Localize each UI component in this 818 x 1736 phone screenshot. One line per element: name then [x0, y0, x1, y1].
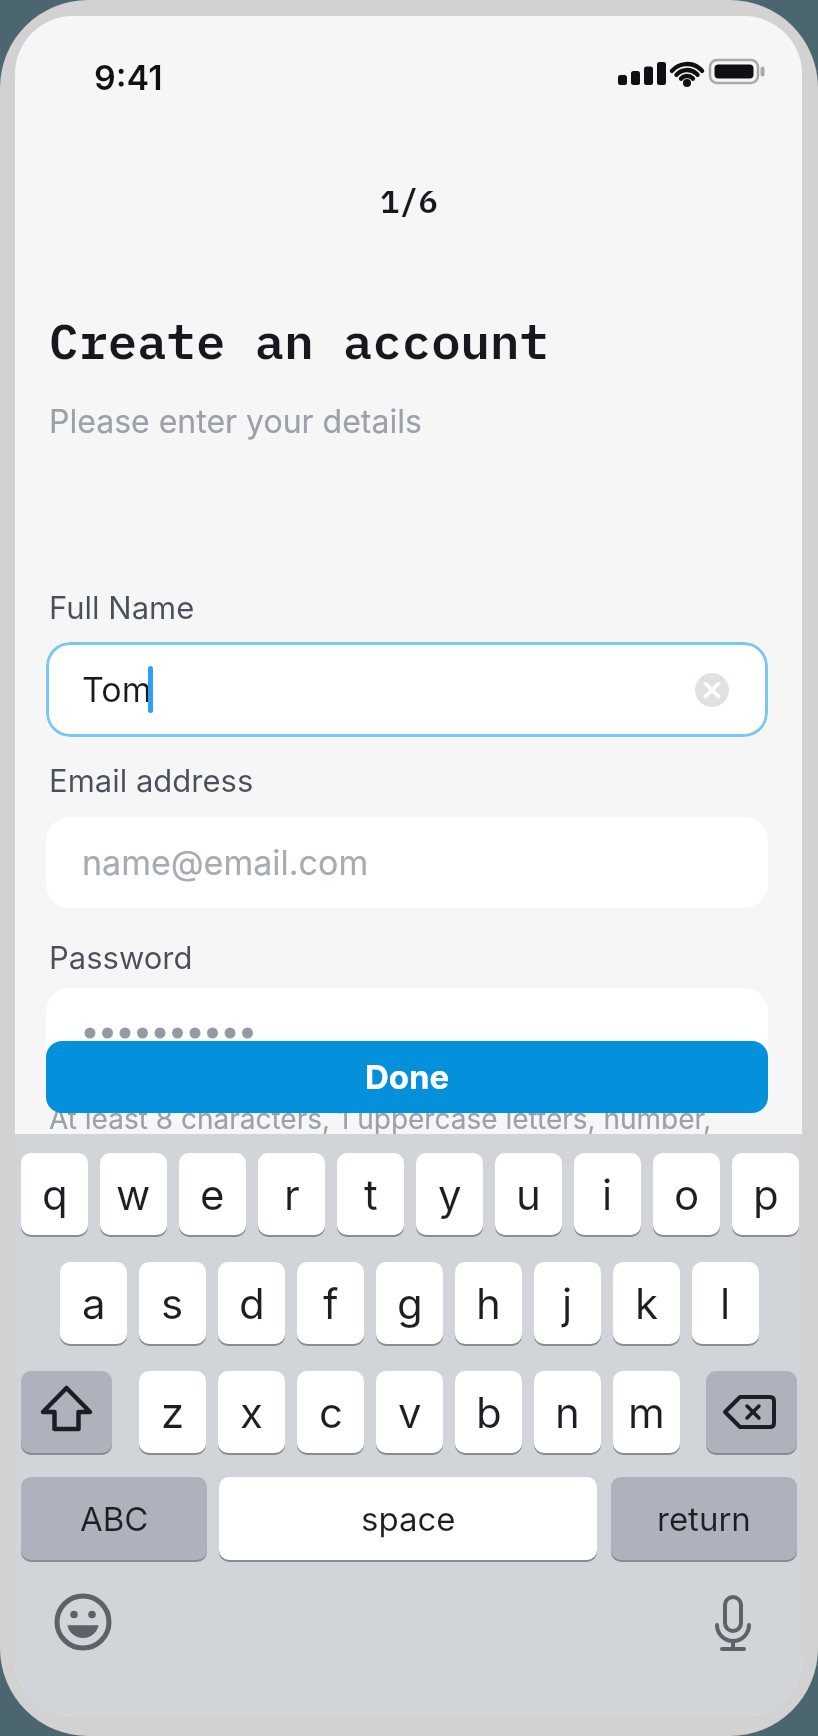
staticText: v: [398, 1387, 422, 1438]
button[interactable]: q: [21, 1153, 88, 1235]
button[interactable]: z: [139, 1371, 206, 1453]
staticText: d: [239, 1278, 265, 1329]
button[interactable]: Done: [46, 1041, 768, 1113]
button[interactable]: d: [218, 1262, 285, 1344]
button[interactable]: r: [258, 1153, 325, 1235]
button[interactable]: m: [613, 1371, 680, 1453]
staticText: u: [516, 1169, 541, 1220]
staticText: Done: [365, 1057, 450, 1097]
staticText: name@email.com: [82, 842, 369, 883]
staticText: e: [200, 1169, 225, 1220]
staticText: s: [161, 1278, 184, 1329]
button[interactable]: g: [376, 1262, 443, 1344]
staticText: r: [284, 1169, 300, 1220]
staticText: ABC: [80, 1499, 149, 1539]
staticText: i: [602, 1169, 613, 1220]
staticText: Password: [49, 939, 193, 977]
staticText: x: [240, 1387, 263, 1438]
staticText: k: [635, 1278, 659, 1329]
button[interactable]: [55, 1594, 111, 1650]
staticText: Tom: [82, 669, 152, 710]
staticText: At least 8 characters, 1 uppercase lette…: [49, 1102, 712, 1136]
button[interactable]: [706, 1371, 797, 1453]
button[interactable]: [21, 1371, 112, 1453]
staticText: c: [319, 1387, 343, 1438]
button[interactable]: y: [416, 1153, 483, 1235]
staticText: Email address: [49, 762, 254, 800]
staticText: Full Name: [49, 589, 195, 627]
staticText: z: [161, 1387, 185, 1438]
staticText: g: [397, 1278, 423, 1329]
staticText: p: [753, 1169, 779, 1220]
button[interactable]: j: [534, 1262, 601, 1344]
staticText: 1/6: [380, 180, 438, 222]
button[interactable]: c: [297, 1371, 364, 1453]
staticText: space: [361, 1499, 456, 1539]
button[interactable]: e: [179, 1153, 246, 1235]
button[interactable]: p: [732, 1153, 799, 1235]
button[interactable]: name@email.com: [46, 817, 768, 908]
staticText: m: [628, 1387, 665, 1438]
staticText: j: [562, 1278, 573, 1329]
staticText: b: [476, 1387, 502, 1438]
staticText: return: [657, 1499, 751, 1539]
staticText: q: [42, 1169, 68, 1220]
staticText: y: [438, 1169, 462, 1220]
staticText: l: [720, 1278, 731, 1329]
button[interactable]: n: [534, 1371, 601, 1453]
button[interactable]: [46, 988, 768, 1080]
staticText: w: [116, 1169, 151, 1220]
button[interactable]: o: [653, 1153, 720, 1235]
button[interactable]: x: [218, 1371, 285, 1453]
staticText: n: [555, 1387, 580, 1438]
staticText: Create an account: [49, 309, 549, 373]
button[interactable]: t: [337, 1153, 404, 1235]
button[interactable]: ABC: [21, 1477, 207, 1560]
button[interactable]: f: [297, 1262, 364, 1344]
staticText: a: [82, 1278, 106, 1329]
button[interactable]: k: [613, 1262, 680, 1344]
button[interactable]: space: [219, 1477, 597, 1560]
staticText: f: [323, 1278, 339, 1329]
button[interactable]: s: [139, 1262, 206, 1344]
staticText: Please enter your details: [49, 402, 422, 441]
button[interactable]: l: [692, 1262, 759, 1344]
button[interactable]: [705, 1595, 761, 1661]
staticText: t: [364, 1169, 378, 1220]
button[interactable]: Tom: [46, 642, 768, 737]
staticText: o: [674, 1169, 700, 1220]
staticText: h: [476, 1278, 501, 1329]
button[interactable]: u: [495, 1153, 562, 1235]
button[interactable]: h: [455, 1262, 522, 1344]
button[interactable]: [695, 673, 729, 707]
button[interactable]: a: [60, 1262, 127, 1344]
button[interactable]: i: [574, 1153, 641, 1235]
button[interactable]: b: [455, 1371, 522, 1453]
button[interactable]: w: [100, 1153, 167, 1235]
staticText: 9:41: [94, 57, 163, 98]
button[interactable]: v: [376, 1371, 443, 1453]
button[interactable]: return: [611, 1477, 797, 1560]
